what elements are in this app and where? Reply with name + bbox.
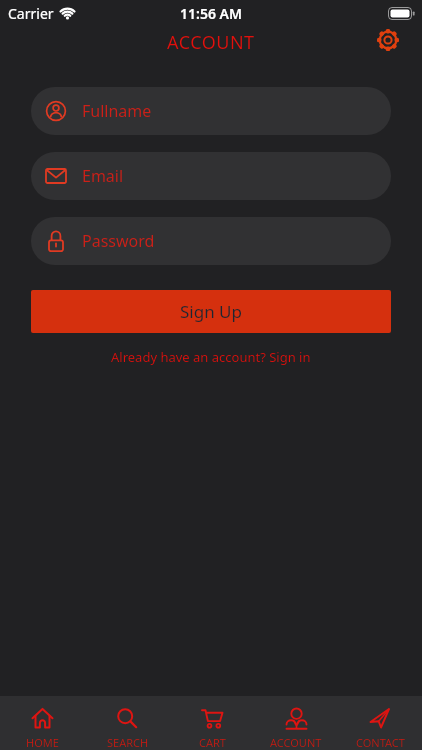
staticText: Already have an account? Sign in [111, 348, 311, 366]
button[interactable] [375, 27, 401, 53]
staticText: Email [82, 165, 124, 187]
button[interactable]: CART [170, 696, 254, 750]
staticText: SEARCH [107, 735, 149, 750]
button[interactable]: SEARCH [85, 696, 170, 750]
button[interactable]: Password [31, 217, 391, 265]
button[interactable]: Email [31, 152, 391, 200]
button[interactable]: Fullname [31, 87, 391, 135]
button[interactable]: HOME [0, 696, 85, 750]
staticText: ACCOUNT [167, 30, 255, 55]
button[interactable]: ACCOUNT [254, 696, 338, 750]
staticText: 11:56 AM [180, 4, 242, 23]
staticText: Sign Up [180, 300, 242, 323]
staticText: CART [199, 735, 226, 750]
staticText: Password [82, 230, 155, 252]
button[interactable]: Already have an account? Sign in [31, 348, 391, 366]
button[interactable]: CONTACT [338, 696, 422, 750]
staticText: CONTACT [356, 735, 405, 750]
staticText: ACCOUNT [270, 735, 322, 750]
staticText: Carrier [8, 4, 54, 23]
staticText: Fullname [82, 100, 152, 122]
staticText: HOME [26, 735, 59, 750]
button[interactable]: Sign Up [31, 290, 391, 333]
